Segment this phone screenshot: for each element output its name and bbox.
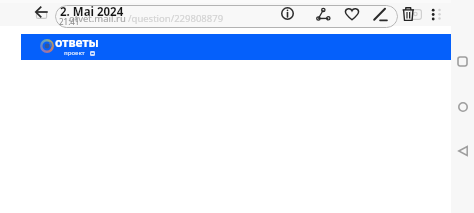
staticText: ответы [55, 34, 99, 50]
button[interactable]: Delete [401, 6, 416, 21]
button[interactable]: Edit [372, 6, 389, 23]
button[interactable]: Back [456, 144, 469, 157]
button[interactable]: Home [456, 100, 469, 113]
staticText: 21:41 [59, 16, 80, 27]
button[interactable]: Bookmark [344, 7, 360, 23]
button[interactable]: Page info [280, 6, 297, 23]
button[interactable]: Share [314, 6, 330, 22]
staticText: 2. Mai 2024 [60, 4, 124, 20]
staticText: /question/229808879 [128, 12, 224, 25]
staticText: проект [64, 49, 85, 57]
button[interactable]: ответы [21, 34, 451, 60]
button[interactable]: otvet.mail.ru [55, 5, 398, 28]
staticText: otvet.mail.ru [69, 12, 126, 25]
button[interactable]: Back [34, 5, 48, 19]
button[interactable]: More options [428, 5, 440, 17]
button[interactable]: Recent apps [456, 55, 469, 68]
